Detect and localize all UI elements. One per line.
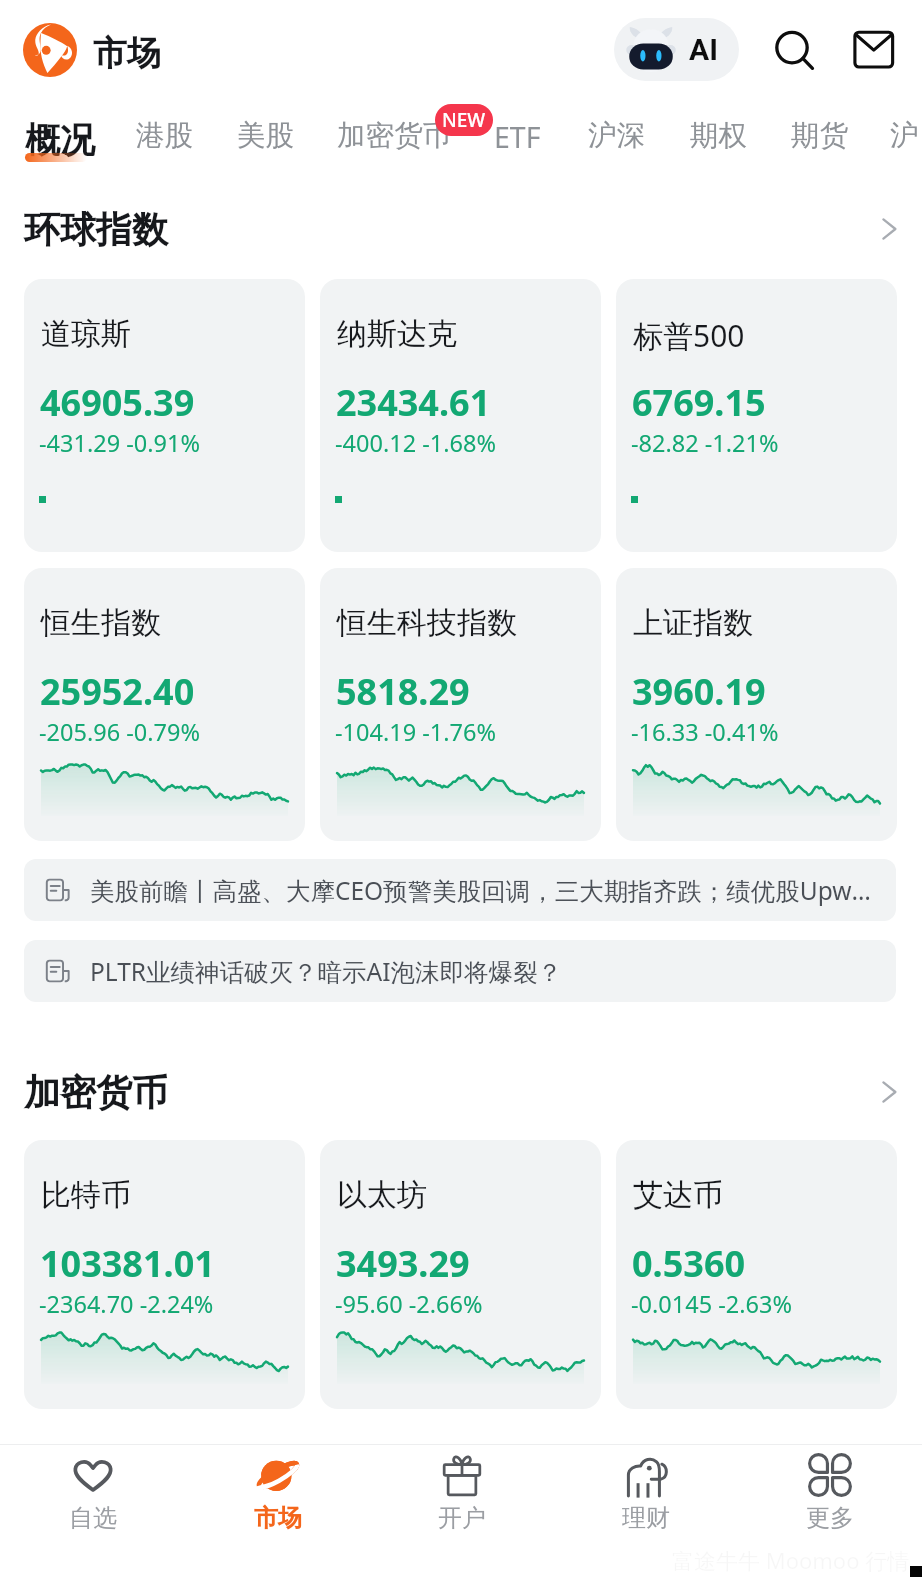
- button[interactable]: 自选: [0, 1445, 185, 1592]
- staticText: ETF: [494, 118, 541, 157]
- button[interactable]: PLTR业绩神话破灭？暗示AI泡沫即将爆裂？: [24, 940, 896, 1002]
- staticText: -0.0145 -2.63%: [631, 1288, 792, 1320]
- staticText: 纳斯达克: [337, 315, 457, 353]
- staticText: 艾达币: [633, 1176, 723, 1214]
- staticText: 恒生科技指数: [337, 604, 517, 642]
- button[interactable]: 标普500: [616, 279, 897, 552]
- staticText: -2364.70 -2.24%: [39, 1288, 214, 1320]
- button[interactable]: ETF: [494, 118, 541, 157]
- staticText: 沪: [890, 118, 919, 154]
- staticText: 3493.29: [336, 1239, 470, 1288]
- button[interactable]: 理财: [554, 1445, 738, 1592]
- button[interactable]: 以太坊: [320, 1140, 601, 1409]
- button[interactable]: 概况: [25, 118, 95, 162]
- button[interactable]: 加密货币: [337, 118, 451, 154]
- staticText: -400.12 -1.68%: [335, 427, 496, 459]
- staticText: 3960.19: [632, 667, 766, 716]
- button[interactable]: 恒生科技指数: [320, 568, 601, 841]
- staticText: -104.19 -1.76%: [335, 716, 496, 748]
- staticText: 市场: [93, 32, 161, 75]
- staticText: -431.29 -0.91%: [39, 427, 200, 459]
- staticText: 比特币: [41, 1176, 131, 1214]
- button[interactable]: 艾达币: [616, 1140, 897, 1409]
- staticText: 港股: [136, 118, 193, 154]
- button[interactable]: 上证指数: [616, 568, 897, 841]
- button[interactable]: 纳斯达克: [320, 279, 601, 552]
- staticText: 沪深: [588, 118, 645, 154]
- staticText: 加密货币: [24, 1070, 168, 1115]
- staticText: 恒生指数: [41, 604, 161, 642]
- button[interactable]: 期权: [690, 118, 747, 154]
- button[interactable]: 恒生指数: [24, 568, 305, 841]
- button[interactable]: 市场: [185, 1445, 370, 1592]
- staticText: AI: [689, 32, 718, 67]
- button[interactable]: Messages: [845, 20, 903, 78]
- staticText: 46905.39: [40, 378, 195, 427]
- staticText: PLTR业绩神话破灭？暗示AI泡沫即将爆裂？: [90, 955, 876, 988]
- button[interactable]: 环球指数: [0, 198, 922, 260]
- staticText: 6769.15: [632, 378, 766, 427]
- button[interactable]: 道琼斯: [24, 279, 305, 552]
- staticText: 标普500: [633, 315, 745, 356]
- button[interactable]: 开户: [370, 1445, 554, 1592]
- staticText: -205.96 -0.79%: [39, 716, 200, 748]
- staticText: 美股前瞻丨高盛、大摩CEO预警美股回调，三大期指齐跌；绩优股Upwor…: [90, 874, 876, 907]
- button[interactable]: 加密货币: [0, 1061, 922, 1123]
- staticText: 开户: [438, 1503, 486, 1533]
- button[interactable]: 美股: [237, 118, 294, 154]
- staticText: -95.60 -2.66%: [335, 1288, 483, 1320]
- button[interactable]: 美股前瞻丨高盛、大摩CEO预警美股回调，三大期指齐跌；绩优股Upwor…: [24, 859, 896, 921]
- staticText: 上证指数: [633, 604, 753, 642]
- staticText: -82.82 -1.21%: [631, 427, 779, 459]
- staticText: 期货: [791, 118, 848, 154]
- staticText: 期权: [690, 118, 747, 154]
- button[interactable]: AI: [614, 18, 739, 81]
- staticText: NEW: [442, 107, 486, 133]
- staticText: 23434.61: [336, 378, 491, 427]
- staticText: 5818.29: [336, 667, 470, 716]
- staticText: -16.33 -0.41%: [631, 716, 779, 748]
- button[interactable]: 沪: [890, 118, 919, 154]
- staticText: 加密货币: [337, 118, 451, 154]
- staticText: 0.5360: [632, 1239, 746, 1288]
- staticText: 环球指数: [24, 207, 168, 252]
- staticText: 市场: [254, 1503, 302, 1533]
- button[interactable]: 更多: [738, 1445, 922, 1592]
- staticText: 25952.40: [40, 667, 195, 716]
- staticText: 理财: [622, 1503, 670, 1533]
- button[interactable]: Search: [763, 20, 821, 78]
- staticText: 美股: [237, 118, 294, 154]
- staticText: 以太坊: [337, 1176, 427, 1214]
- staticText: 概况: [25, 118, 95, 162]
- button[interactable]: 沪深: [588, 118, 645, 154]
- button[interactable]: Futu: [23, 23, 77, 77]
- staticText: 道琼斯: [41, 315, 131, 353]
- staticText: 103381.01: [40, 1239, 215, 1288]
- staticText: 自选: [69, 1503, 117, 1533]
- button[interactable]: 港股: [136, 118, 193, 154]
- staticText: 更多: [806, 1503, 854, 1533]
- button[interactable]: 比特币: [24, 1140, 305, 1409]
- button[interactable]: 期货: [791, 118, 848, 154]
